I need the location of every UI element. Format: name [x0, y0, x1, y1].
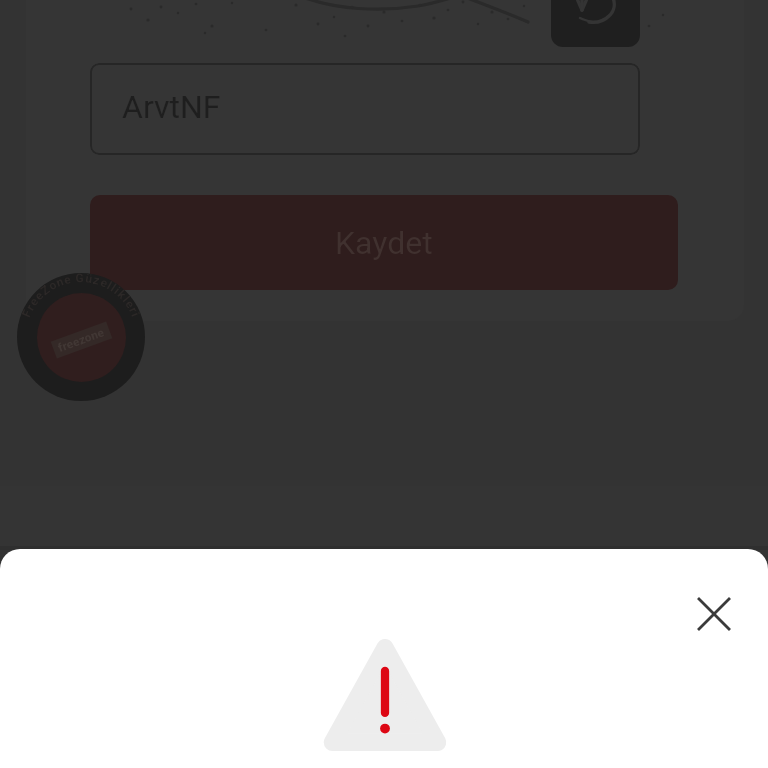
staticText: ArvtNF	[122, 88, 221, 126]
staticText: Kaydet	[335, 224, 433, 262]
button[interactable]: FreeZone logo	[17, 273, 145, 401]
button[interactable]: ArvtNF	[90, 63, 640, 155]
staticText: freezone	[56, 325, 107, 355]
button[interactable]: Undo	[551, 0, 640, 47]
button[interactable]: Close	[686, 586, 742, 642]
